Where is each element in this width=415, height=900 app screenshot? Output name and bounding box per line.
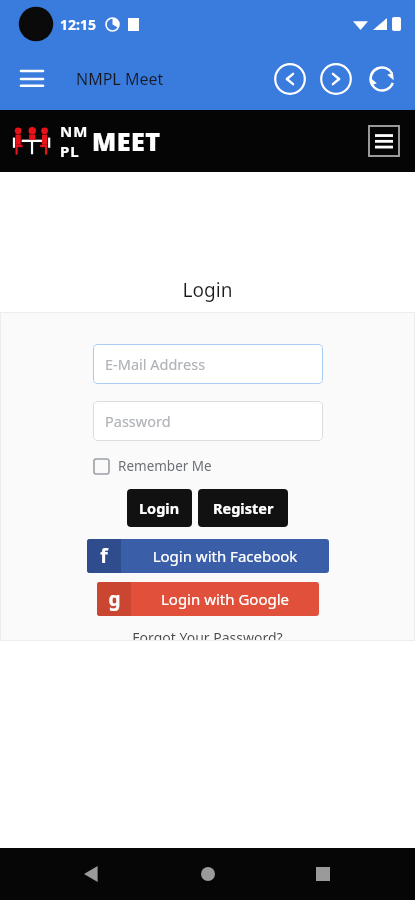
staticText: Login with Google <box>131 589 319 609</box>
staticText: 12:15 <box>60 15 96 34</box>
button[interactable]: Remember Me <box>94 457 212 475</box>
staticText: g <box>108 586 121 612</box>
button[interactable]: Forgot Your Password? <box>0 628 415 641</box>
button[interactable]: Open navigation <box>365 122 403 160</box>
staticText: Login <box>139 498 180 518</box>
button[interactable]: Password <box>93 401 323 441</box>
button[interactable]: f <box>87 539 329 573</box>
button[interactable]: Back <box>271 60 309 98</box>
button[interactable]: Home <box>184 850 232 898</box>
button[interactable]: Forward <box>317 60 355 98</box>
staticText: Password <box>105 411 171 431</box>
staticText: NM <box>60 121 89 141</box>
button[interactable]: g <box>97 582 319 616</box>
button[interactable]: Menu <box>10 57 54 101</box>
staticText: PL <box>60 141 80 161</box>
staticText: NMPL Meet <box>76 68 164 90</box>
staticText: MEET <box>92 124 161 158</box>
button[interactable]: Register <box>198 489 288 527</box>
button[interactable]: E-Mail Address <box>93 344 323 384</box>
button[interactable]: Back <box>68 850 116 898</box>
staticText: Login <box>0 277 415 303</box>
button[interactable]: Recents <box>299 850 347 898</box>
button[interactable]: Refresh <box>363 60 401 98</box>
staticText: Login with Facebook <box>121 546 329 566</box>
staticText: Register <box>213 498 274 518</box>
staticText: f <box>100 543 108 569</box>
staticText: E-Mail Address <box>105 354 206 374</box>
staticText: Remember Me <box>118 457 212 475</box>
button[interactable]: Login <box>127 489 192 527</box>
